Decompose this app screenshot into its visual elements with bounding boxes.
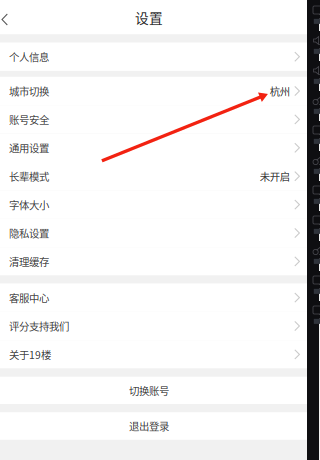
staticText: 个人信息 [9, 49, 49, 64]
staticText: 隐私设置 [9, 225, 49, 241]
staticText: 账号安全 [9, 112, 49, 127]
button[interactable]: 长辈模式 [0, 162, 307, 190]
staticText: 设置 [135, 7, 163, 27]
staticText: 切换账号 [129, 383, 169, 398]
button[interactable]: 清理缓存 [0, 247, 307, 276]
button[interactable]: 客服中心 [0, 283, 307, 312]
staticText: 客服中心 [9, 290, 49, 305]
staticText: 清理缓存 [9, 254, 49, 269]
staticText: 未开启 [260, 169, 290, 184]
button[interactable]: 账号安全 [0, 105, 307, 134]
staticText: 通用设置 [9, 140, 49, 155]
button[interactable]: 隐私设置 [0, 219, 307, 247]
staticText: 退出登录 [129, 418, 169, 434]
button[interactable]: 城市切换 [0, 77, 307, 105]
button[interactable]: 切换账号 [0, 377, 307, 404]
staticText: 城市切换 [9, 83, 49, 99]
button[interactable]: 评分支持我们 [0, 312, 307, 340]
button[interactable]: Back [0, 0, 20, 35]
staticText: 关于19楼 [9, 347, 51, 362]
staticText: 长辈模式 [9, 169, 49, 184]
button[interactable]: 个人信息 [0, 42, 307, 71]
staticText: 杭州 [270, 83, 290, 99]
button[interactable]: 退出登录 [0, 412, 307, 440]
button[interactable]: 通用设置 [0, 134, 307, 162]
staticText: 评分支持我们 [9, 318, 69, 334]
button[interactable]: 关于19楼 [0, 340, 307, 369]
staticText: 字体大小 [9, 197, 49, 212]
button[interactable]: 字体大小 [0, 190, 307, 219]
